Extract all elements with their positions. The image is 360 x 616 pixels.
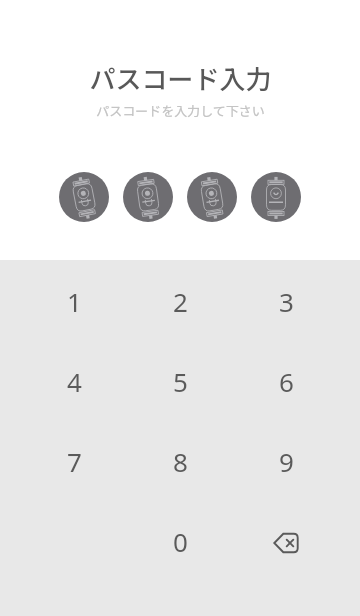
staticText: パスコードを入力して下さい	[96, 101, 265, 120]
button[interactable]: 6	[233, 341, 339, 421]
button[interactable]: 4	[21, 341, 127, 421]
staticText: 1	[67, 284, 82, 319]
staticText: 5	[173, 364, 188, 399]
button[interactable]: 3	[233, 261, 339, 341]
button[interactable]: Passcode digit	[59, 172, 109, 222]
button[interactable]: Passcode digit	[187, 172, 237, 222]
other: Backspace	[272, 529, 300, 553]
button[interactable]: 1	[21, 261, 127, 341]
staticText: 4	[67, 364, 82, 399]
button[interactable]: 7	[21, 421, 127, 501]
staticText: 7	[67, 444, 82, 479]
staticText: 3	[279, 284, 294, 319]
button[interactable]: 8	[127, 421, 233, 501]
button[interactable]: Passcode digit	[123, 172, 173, 222]
button[interactable]: 9	[233, 421, 339, 501]
staticText: 8	[173, 444, 188, 479]
staticText: 9	[279, 444, 294, 479]
staticText: パスコード入力	[89, 59, 272, 97]
staticText: 2	[173, 284, 188, 319]
button[interactable]: Passcode digit	[251, 172, 301, 222]
button[interactable]: 2	[127, 261, 233, 341]
staticText: 0	[173, 524, 188, 559]
button[interactable]: Backspace	[233, 501, 339, 581]
button[interactable]: 5	[127, 341, 233, 421]
button[interactable]: 0	[127, 501, 233, 581]
staticText: 6	[279, 364, 294, 399]
